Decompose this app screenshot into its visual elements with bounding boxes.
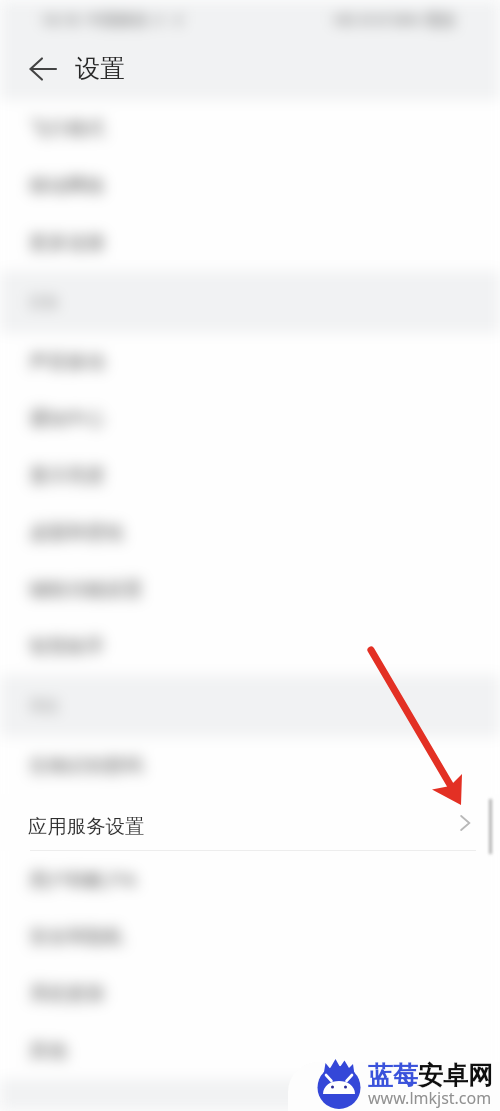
staticText: 16:18 中国移动 ıl ıl <box>41 9 183 29</box>
staticText: 桌面和壁纸 <box>29 521 124 545</box>
staticText: 系统 <box>29 697 59 716</box>
staticText: 蓝莓 <box>368 1060 418 1091</box>
button[interactable]: 应用服务设置 <box>0 794 500 851</box>
staticText: 安卓网 <box>418 1060 493 1091</box>
staticText: 声音振动 <box>29 350 105 374</box>
staticText: HD ıll ıll 56% 電池 <box>334 9 455 29</box>
staticText: 移动网络 <box>29 174 105 198</box>
staticText: www.lmkjst.com <box>368 1087 492 1109</box>
staticText: 设备 <box>29 293 59 312</box>
staticText: 通知中心 <box>29 407 105 431</box>
staticText: 显示亮度 <box>29 464 105 488</box>
staticText: 辅助功能设置 <box>29 578 143 602</box>
staticText: 飞行模式 <box>29 117 105 141</box>
staticText: 用户和帐户A <box>29 867 137 893</box>
staticText: 系统更新 <box>29 982 105 1006</box>
staticText: 设置 <box>75 53 125 84</box>
staticText: 智慧助手 <box>29 635 105 659</box>
staticText: 生物识别密码 <box>29 754 143 778</box>
staticText: 其他 <box>29 1039 67 1063</box>
staticText: 应用服务设置 <box>28 814 145 838</box>
button[interactable]: 返回 <box>19 45 67 93</box>
staticText: 安全和隐私 <box>29 925 124 949</box>
staticText: 更多连接 <box>29 231 105 255</box>
